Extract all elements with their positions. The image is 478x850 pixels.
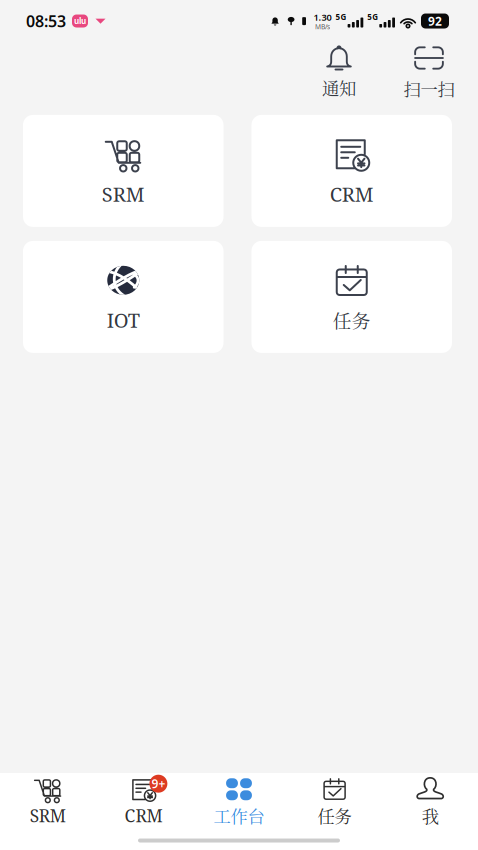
staticText: CRM bbox=[330, 180, 374, 207]
staticText: 08:53 bbox=[26, 10, 66, 32]
button[interactable]: CRM bbox=[251, 115, 452, 227]
staticText: 92 bbox=[428, 13, 442, 29]
staticText: 9+ bbox=[151, 776, 165, 792]
button[interactable]: 9+ bbox=[96, 777, 191, 827]
staticText: SRM bbox=[30, 804, 66, 827]
staticText: 5G bbox=[367, 12, 378, 22]
staticText: 通知 bbox=[322, 75, 356, 100]
staticText: 我 bbox=[422, 803, 439, 828]
staticText: 任务 bbox=[333, 306, 371, 333]
staticText: 工作台 bbox=[213, 803, 264, 828]
staticText: MB/s bbox=[315, 22, 330, 31]
staticText: 扫一扫 bbox=[403, 76, 454, 101]
button[interactable]: 扫一扫 bbox=[398, 40, 460, 103]
button[interactable]: SRM bbox=[0, 777, 96, 827]
staticText: 5G bbox=[336, 12, 347, 22]
staticText: CRM bbox=[124, 804, 162, 827]
button[interactable]: 我 bbox=[382, 777, 478, 827]
button[interactable]: SRM bbox=[23, 115, 223, 227]
button[interactable]: 工作台 bbox=[191, 777, 287, 827]
staticText: 任务 bbox=[318, 803, 352, 828]
button[interactable]: 任务 bbox=[287, 777, 382, 827]
button[interactable]: 通知 bbox=[308, 41, 370, 102]
staticText: IOT bbox=[107, 306, 140, 333]
staticText: 1.30 bbox=[314, 11, 332, 23]
button[interactable]: 任务 bbox=[251, 241, 452, 353]
button[interactable]: IOT bbox=[23, 241, 223, 353]
staticText: SRM bbox=[102, 180, 145, 207]
staticText: ulu bbox=[74, 16, 86, 26]
